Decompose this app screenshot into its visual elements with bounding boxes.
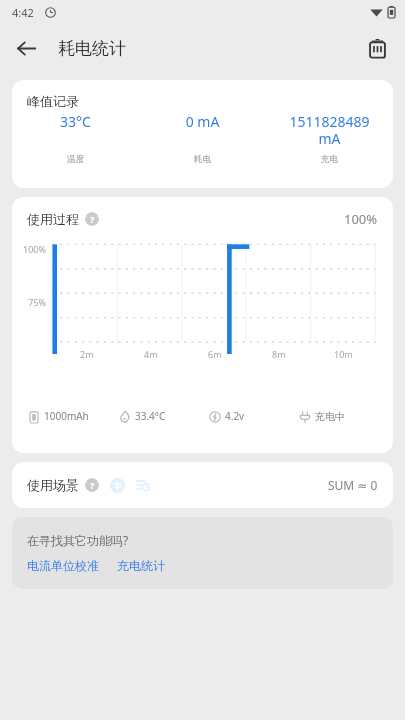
staticText: 33.4°C xyxy=(135,409,166,423)
button[interactable]: Swap units xyxy=(109,477,126,494)
button[interactable]: 充电统计 xyxy=(117,558,165,573)
staticText: 8m xyxy=(272,348,286,360)
staticText: 在寻找其它功能吗? xyxy=(27,532,129,548)
staticText: 0 mA xyxy=(161,112,244,131)
staticText: 4.2v xyxy=(225,409,245,423)
staticText: ? xyxy=(90,213,95,225)
staticText: 33°C xyxy=(34,112,117,131)
button[interactable]: Help xyxy=(85,478,99,492)
staticText: 温度 xyxy=(12,153,139,164)
staticText: 耗电 xyxy=(139,153,266,164)
staticText: 100% xyxy=(12,243,46,255)
staticText: SUM ≈ 0 xyxy=(328,477,378,493)
staticText: 使用过程 xyxy=(27,211,79,227)
staticText: 1000mAh xyxy=(44,409,89,423)
staticText: 2m xyxy=(80,348,94,360)
staticText: 4:42 xyxy=(12,5,34,20)
button[interactable]: History list xyxy=(134,477,151,494)
staticText: 4m xyxy=(144,348,158,360)
button[interactable]: Battery history xyxy=(357,28,397,68)
staticText: 耗电统计 xyxy=(58,38,126,59)
button[interactable]: 电流单位校准 xyxy=(27,558,99,573)
staticText: 充电中 xyxy=(315,410,345,423)
staticText: 峰值记录 xyxy=(27,93,79,109)
staticText: ? xyxy=(90,479,95,491)
staticText: 充电 xyxy=(266,153,393,164)
button[interactable]: Help xyxy=(85,212,99,226)
staticText: 使用场景 xyxy=(27,477,79,493)
staticText: 100% xyxy=(344,210,378,228)
button[interactable]: 峰值记录 xyxy=(12,80,393,188)
staticText: 6m xyxy=(208,348,222,360)
button[interactable]: Back xyxy=(6,28,46,68)
staticText: 75% xyxy=(12,296,46,308)
staticText: 1511828489 mA xyxy=(288,112,371,148)
staticText: 10m xyxy=(334,348,353,360)
